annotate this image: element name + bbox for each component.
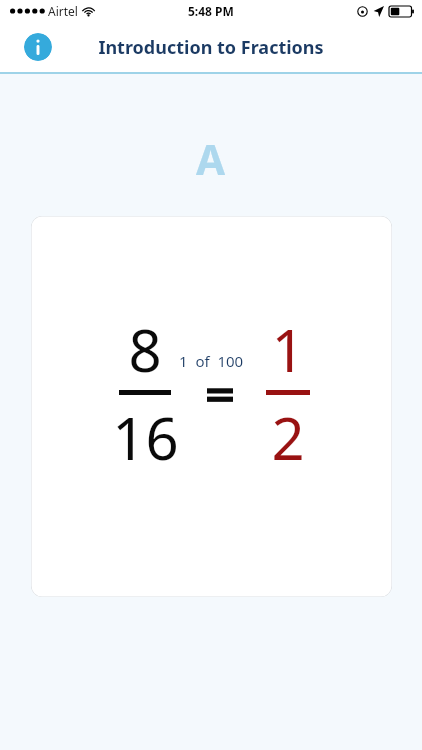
- staticText: 1 of 100: [179, 351, 244, 371]
- staticText: 1: [271, 310, 305, 389]
- staticText: A: [196, 130, 226, 187]
- staticText: Introduction to Fractions: [98, 35, 324, 60]
- staticText: 8: [128, 310, 162, 389]
- staticText: 2: [271, 398, 305, 477]
- staticText: 5:48 PM: [188, 3, 234, 19]
- staticText: Airtel: [48, 3, 78, 19]
- button[interactable]: 8: [31, 216, 392, 597]
- button[interactable]: Information: [24, 33, 52, 61]
- staticText: 16: [112, 398, 179, 477]
